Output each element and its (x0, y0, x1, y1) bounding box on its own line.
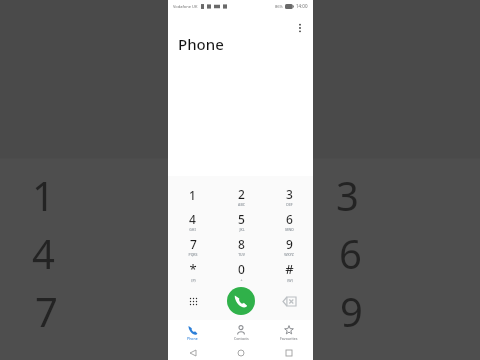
button[interactable]: # (265, 259, 313, 284)
button[interactable]: 8 (217, 234, 265, 259)
staticText: (P) (191, 278, 196, 283)
staticText: 5 (238, 211, 245, 227)
button[interactable]: Call (227, 287, 255, 315)
staticText: 3 (336, 168, 359, 222)
staticText: 14:00 (296, 3, 308, 9)
button[interactable]: Recents (282, 346, 296, 360)
staticText: 9 (286, 236, 293, 252)
button[interactable]: Home (234, 346, 248, 360)
staticText: 7 (190, 236, 197, 252)
button[interactable]: Phone (168, 320, 217, 346)
staticText: 4 (32, 226, 55, 280)
staticText: 2 (238, 186, 245, 202)
staticText: Contacts (234, 336, 249, 341)
button[interactable]: Backspace (278, 290, 300, 312)
button[interactable]: Contacts (217, 320, 265, 346)
staticText: MNO (285, 227, 294, 232)
staticText: TUV (238, 252, 245, 257)
button[interactable]: 9 (265, 234, 313, 259)
button[interactable]: Favourites (265, 320, 313, 346)
staticText: (W) (287, 278, 293, 283)
button[interactable]: 5 (217, 209, 265, 234)
staticText: Phone (187, 336, 198, 341)
button[interactable]: 2 (217, 184, 265, 209)
button[interactable]: Back (186, 346, 200, 360)
staticText: 3 (286, 186, 293, 202)
staticText: 4 (189, 211, 196, 227)
staticText: 1 (189, 187, 196, 203)
button[interactable]: Keypad (182, 290, 204, 312)
staticText: + (240, 277, 243, 282)
staticText: 9 (340, 284, 363, 338)
staticText: 8 (238, 236, 245, 252)
button[interactable]: 7 (168, 234, 217, 259)
staticText: WXYZ (284, 252, 294, 257)
staticText: ABC (238, 202, 245, 207)
button[interactable]: 4 (168, 209, 217, 234)
staticText: 6 (286, 211, 293, 227)
staticText: JKL (239, 227, 245, 232)
staticText: Favourites (280, 336, 298, 341)
button[interactable]: * (168, 259, 217, 284)
staticText: Phone (178, 34, 224, 54)
button[interactable]: 6 (265, 209, 313, 234)
staticText: PQRS (188, 252, 198, 257)
staticText: 0 (238, 261, 245, 277)
staticText: GHI (189, 227, 196, 232)
staticText: Vodafone UK (173, 4, 198, 9)
button[interactable]: 3 (265, 184, 313, 209)
button[interactable]: More options (291, 19, 309, 37)
staticText: 6 (339, 226, 362, 280)
staticText: 86% (275, 4, 283, 9)
staticText: # (285, 260, 294, 278)
staticText: 7 (35, 284, 58, 338)
staticText: * (189, 260, 197, 278)
staticText: 1 (32, 168, 55, 222)
button[interactable]: 1 (168, 184, 217, 209)
staticText: DEF (286, 202, 293, 207)
button[interactable]: 0 (217, 259, 265, 284)
